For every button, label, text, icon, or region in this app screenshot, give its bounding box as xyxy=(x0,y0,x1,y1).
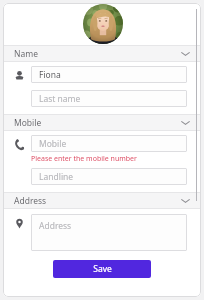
button[interactable]: Landline xyxy=(31,168,187,185)
button[interactable]: Mobile xyxy=(31,135,187,152)
button[interactable]: Fiona xyxy=(31,66,187,83)
staticText: Please enter the mobile number xyxy=(31,154,137,164)
button[interactable]: Profile photo xyxy=(83,4,123,44)
button[interactable]: Last name xyxy=(31,90,187,107)
button[interactable]: Save xyxy=(53,260,151,278)
staticText: Mobile xyxy=(14,117,42,129)
staticText: Address xyxy=(14,195,47,207)
staticText: Landline xyxy=(39,171,74,183)
other: Collapse Name xyxy=(181,51,190,57)
button[interactable]: Address xyxy=(3,192,201,209)
staticText: Name xyxy=(14,48,38,60)
button[interactable]: Name xyxy=(3,45,201,62)
other: Collapse Mobile xyxy=(181,120,190,126)
staticText: Mobile xyxy=(39,138,67,150)
button[interactable]: Address xyxy=(31,214,187,251)
staticText: Save xyxy=(93,263,112,275)
staticText: Last name xyxy=(39,93,81,105)
staticText: Fiona xyxy=(39,69,61,81)
staticText: Address xyxy=(39,220,72,232)
other: Collapse Address xyxy=(181,198,190,204)
button[interactable]: Mobile xyxy=(3,114,201,131)
